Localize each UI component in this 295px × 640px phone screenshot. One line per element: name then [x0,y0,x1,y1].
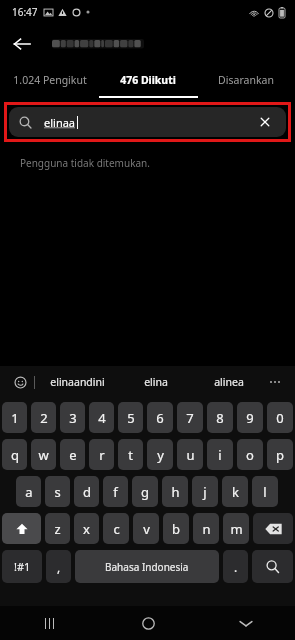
staticText: y [157,446,164,464]
button[interactable]: alinea [192,367,265,397]
staticText: c [113,520,120,538]
button[interactable]: Search [252,550,293,583]
staticText: o [246,446,254,464]
staticText: 1.024 Pengikut [13,73,87,87]
staticText: e [69,446,77,464]
button[interactable]: t [118,439,143,470]
button[interactable]: x [74,513,99,544]
button[interactable]: v [133,513,159,544]
button[interactable]: Clear text [254,111,276,133]
button[interactable]: elinaa [9,107,286,137]
button[interactable]: Emoji [10,372,30,392]
staticText: r [99,446,105,464]
staticText: g [141,483,149,501]
button[interactable]: 4 [89,402,114,433]
staticText: 8 [216,409,224,427]
staticText: b [172,520,180,538]
button[interactable]: k [222,476,248,507]
button[interactable]: !#1 [2,550,42,583]
button[interactable]: elina [119,367,192,397]
staticText: Pengguna tidak ditemukan. [20,156,150,170]
staticText: elinaandini [50,375,105,389]
staticText: , [57,559,61,575]
staticText: 5 [127,409,135,427]
staticText: j [203,483,207,501]
button[interactable]: b [163,513,189,544]
button[interactable]: h [162,476,188,507]
button[interactable]: 2 [31,402,56,433]
staticText: 4 [98,409,106,427]
staticText: x [83,520,90,538]
button[interactable]: Bahasa Indonesia [75,550,219,583]
button[interactable]: z [45,513,70,544]
button[interactable]: s [45,476,70,507]
button[interactable]: 1.024 Pengikut [0,64,99,96]
button[interactable]: 7 [177,402,203,433]
button[interactable]: a [16,476,41,507]
button[interactable]: Recents [0,606,99,640]
staticText: i [218,446,222,464]
staticText: p [276,446,284,464]
button[interactable]: f [103,476,128,507]
button[interactable]: elinaandini [35,367,119,397]
button[interactable]: q [2,439,27,470]
staticText: 16:47 [12,5,38,19]
button[interactable]: 9 [237,402,263,433]
button[interactable]: 6 [147,402,173,433]
staticText: 2 [40,409,48,427]
staticText: 0 [276,409,284,427]
staticText: s [54,483,61,501]
staticText: u [186,446,195,464]
staticText: a [25,483,33,501]
button[interactable]: Home [99,606,197,640]
staticText: 7 [186,409,194,427]
button[interactable]: Back [4,26,40,62]
staticText: l [263,483,267,501]
staticText: alinea [214,375,244,389]
button[interactable]: o [237,439,263,470]
staticText: 9 [246,409,254,427]
staticText: n [202,520,211,538]
button[interactable]: n [193,513,219,544]
staticText: w [38,446,49,464]
button[interactable]: 3 [60,402,85,433]
button[interactable]: u [177,439,203,470]
button[interactable]: . [223,550,248,583]
button[interactable]: i [207,439,233,470]
staticText: d [83,483,91,501]
button[interactable]: p [267,439,293,470]
button[interactable]: 476 Diikuti [99,64,197,96]
button[interactable]: w [31,439,56,470]
button[interactable]: Backspace [253,513,293,544]
button[interactable]: r [89,439,114,470]
staticText: elinaa [44,115,76,130]
button[interactable]: d [74,476,99,507]
button[interactable]: 1 [2,402,27,433]
button[interactable]: l [252,476,278,507]
button[interactable]: 5 [118,402,143,433]
button[interactable]: j [192,476,218,507]
button[interactable]: g [132,476,158,507]
staticText: f [113,483,118,501]
button[interactable]: m [223,513,249,544]
button[interactable]: e [60,439,85,470]
button[interactable]: c [103,513,129,544]
staticText: . [234,559,238,575]
button[interactable]: 8 [207,402,233,433]
button[interactable]: , [46,550,71,583]
staticText: 6 [156,409,164,427]
staticText: 476 Diikuti [120,73,176,87]
button[interactable]: 0 [267,402,293,433]
staticText: t [128,446,133,464]
staticText: m [230,520,243,538]
staticText: Bahasa Indonesia [105,560,189,574]
button[interactable]: y [147,439,173,470]
button[interactable]: Hide keyboard [197,606,295,640]
button[interactable]: Shift [2,513,41,544]
staticText: 1 [11,409,19,427]
staticText: elina [144,375,168,389]
staticText: Disarankan [218,73,274,87]
button[interactable]: More suggestions [265,372,285,392]
staticText: q [11,446,19,464]
button[interactable]: Disarankan [197,64,295,96]
